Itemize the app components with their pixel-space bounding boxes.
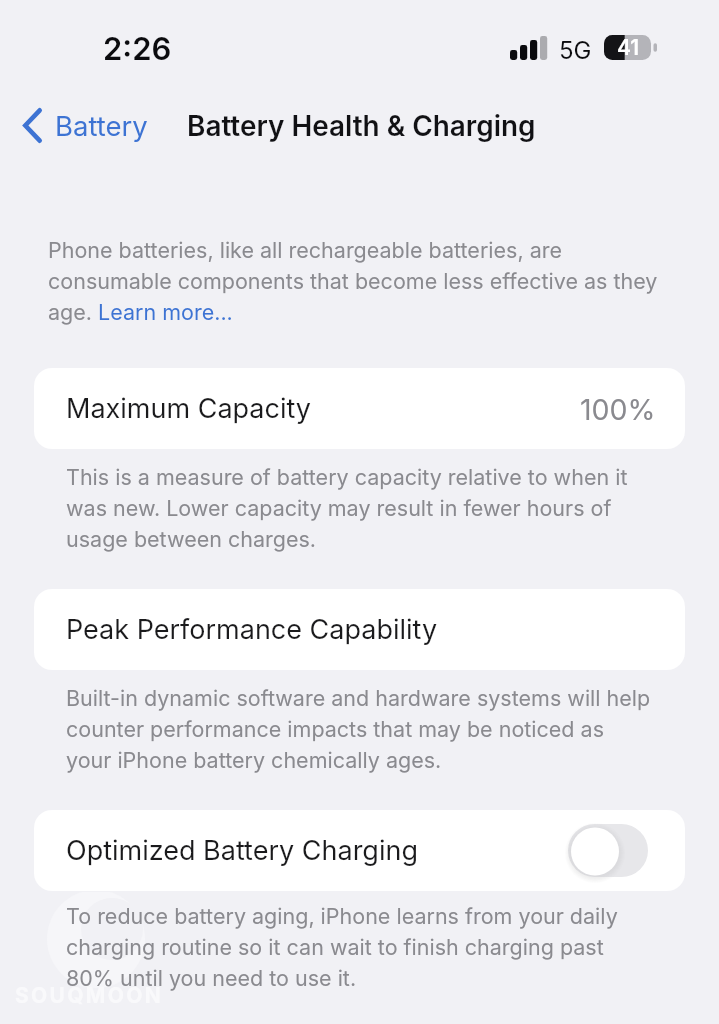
staticText: Battery: [55, 109, 148, 142]
staticText: 100%: [580, 392, 656, 426]
staticText: Maximum Capacity: [66, 392, 312, 425]
staticText: To reduce battery aging, iPhone learns f…: [66, 903, 654, 991]
button[interactable]: Optimized Battery Charging switch: [568, 824, 648, 877]
staticText: 5G: [559, 36, 592, 65]
staticText: 41: [617, 35, 640, 60]
staticText: 2:26: [103, 30, 172, 68]
button[interactable]: Phone batteries, like all rechargeable b…: [48, 237, 660, 325]
button[interactable]: Maximum Capacity: [34, 368, 685, 449]
button[interactable]: Peak Performance Capability: [34, 589, 685, 670]
button[interactable]: Optimized Battery Charging: [34, 810, 685, 891]
staticText: Peak Performance Capability: [66, 613, 438, 646]
staticText: SOUQMOON: [15, 983, 163, 1008]
button[interactable]: Back: [18, 102, 156, 149]
other: Back: [23, 108, 42, 143]
other: Cellular signal strength: [510, 36, 547, 60]
other: Battery 41 percent: [604, 35, 657, 60]
staticText: Optimized Battery Charging: [66, 834, 418, 867]
staticText: This is a measure of battery capacity re…: [66, 464, 654, 552]
staticText: Battery Health & Charging: [187, 109, 536, 143]
staticText: Built-in dynamic software and hardware s…: [66, 685, 654, 773]
